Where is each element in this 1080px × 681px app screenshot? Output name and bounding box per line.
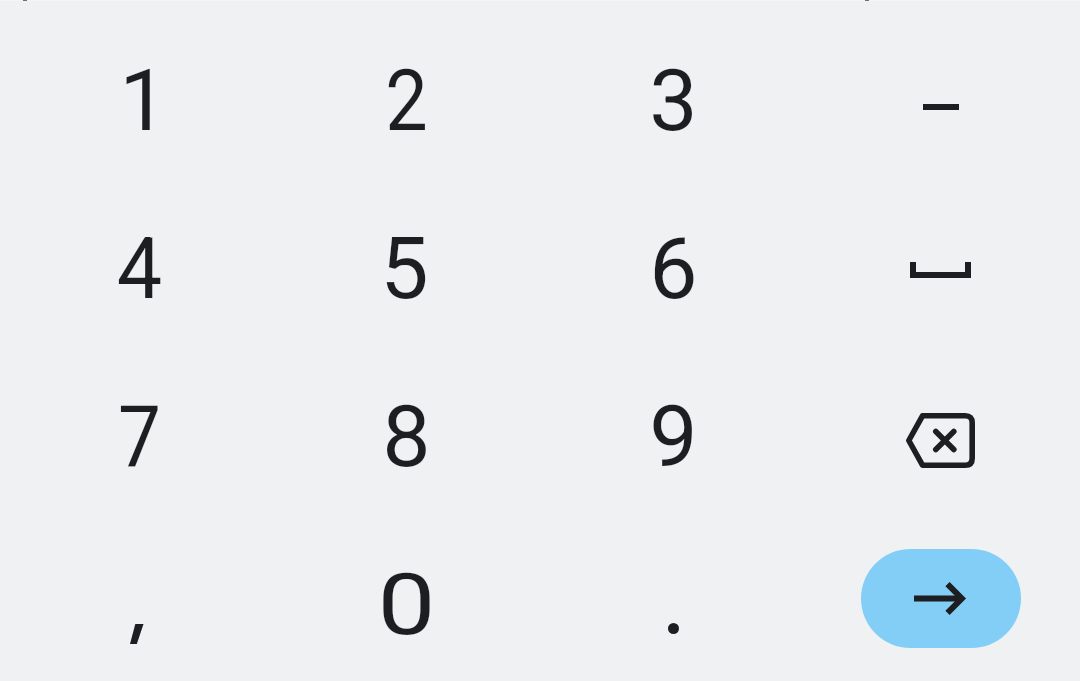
- button[interactable]: 2: [273, 16, 540, 184]
- button[interactable]: 6: [540, 184, 807, 352]
- button[interactable]: 9: [540, 352, 807, 520]
- button[interactable]: 1: [6, 16, 273, 184]
- button[interactable]: Minus: [807, 16, 1074, 184]
- button[interactable]: 4: [6, 184, 273, 352]
- button[interactable]: Enter: [807, 520, 1074, 681]
- staticText: 6: [649, 218, 698, 319]
- staticText: 0: [377, 554, 436, 655]
- staticText: 8: [382, 386, 431, 487]
- button[interactable]: [540, 520, 807, 681]
- button[interactable]: 0: [273, 520, 540, 681]
- button[interactable]: 3: [540, 16, 807, 184]
- button[interactable]: 5: [273, 184, 540, 352]
- staticText: 2: [385, 50, 428, 151]
- button[interactable]: 7: [6, 352, 273, 520]
- staticText: 7: [118, 386, 161, 487]
- button[interactable]: [6, 520, 273, 681]
- staticText: 1: [119, 50, 168, 151]
- staticText: 3: [649, 50, 698, 151]
- staticText: 9: [649, 386, 698, 487]
- staticText: 5: [380, 218, 429, 319]
- button[interactable]: 8: [273, 352, 540, 520]
- button[interactable]: Space: [807, 184, 1074, 352]
- button[interactable]: Backspace: [807, 352, 1074, 520]
- staticText: 4: [116, 218, 163, 319]
